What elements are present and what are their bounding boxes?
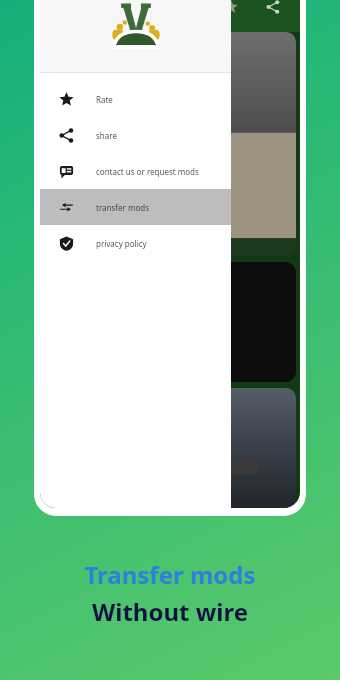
button[interactable] [44,262,296,382]
button[interactable]: share [40,117,231,153]
staticText: contact us or request mods [96,166,199,177]
button[interactable] [44,32,296,256]
staticText: Transfer mods [84,558,256,591]
button[interactable] [44,388,296,508]
staticText: transfer mods [96,202,150,213]
button[interactable]: Rate [40,81,231,117]
staticText: Without wire [92,595,248,628]
staticText: Rate [96,94,113,105]
button[interactable]: contact us or request mods [40,153,231,189]
button[interactable]: transfer mods [40,189,231,225]
button[interactable]: Favorite [214,0,248,24]
button[interactable]: privacy policy [40,225,231,261]
staticText: privacy policy [96,238,147,249]
staticText: share [96,130,117,141]
button[interactable]: Share [256,0,290,24]
